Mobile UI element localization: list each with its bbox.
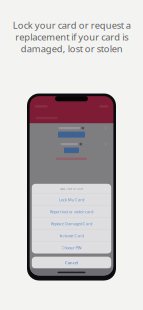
button[interactable]: Activate Card: [32, 230, 111, 241]
staticText: Replace Damaged Card: [51, 221, 92, 226]
staticText: Activate Card: [59, 233, 83, 238]
staticText: Lock your card or request a replacement …: [12, 19, 130, 55]
staticText: Choose PIN: [61, 245, 81, 250]
staticText: SELECT AN OPTION: [60, 187, 83, 190]
staticText: Report lost or stolen card: [50, 209, 93, 214]
button[interactable]: Choose PIN: [32, 242, 111, 253]
staticText: Cancel: [65, 260, 78, 265]
staticText: Lock My Card: [59, 197, 84, 202]
button[interactable]: Report lost or stolen card: [32, 206, 111, 217]
button[interactable]: Lock My Card: [32, 194, 111, 205]
button[interactable]: Cancel: [32, 257, 111, 268]
button[interactable]: Replace Damaged Card: [32, 218, 111, 229]
